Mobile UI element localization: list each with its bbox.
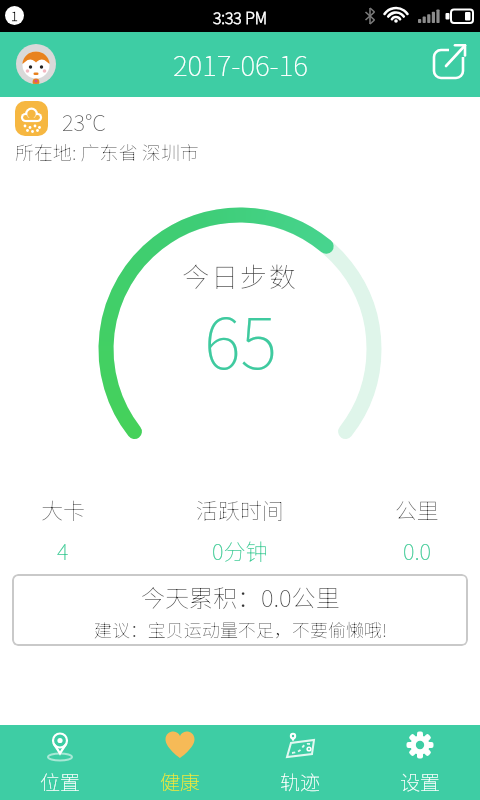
staticText: 今天累积：0.0公里 (141, 579, 340, 614)
staticText: 公里 (395, 493, 440, 525)
button[interactable] (16, 44, 56, 84)
button[interactable]: 设置 (360, 725, 480, 800)
staticText: 3:33 PM (213, 5, 268, 28)
staticText: 设置 (400, 767, 440, 796)
staticText: 1 (11, 6, 18, 25)
staticText: 2017-06-16 (173, 44, 308, 85)
staticText: 今日步数 (182, 256, 298, 295)
button[interactable]: 轨迹 (240, 725, 360, 800)
staticText: 0.0 (403, 534, 432, 566)
staticText: 位置 (40, 767, 80, 796)
staticText: 4 (57, 534, 69, 566)
button[interactable]: 今天累积：0.0公里 (12, 574, 468, 646)
staticText: 0分钟 (212, 534, 268, 566)
staticText: 65 (204, 288, 277, 384)
button[interactable]: 健康 (120, 725, 240, 800)
staticText: 23°C (62, 105, 106, 137)
staticText: 建议：宝贝运动量不足，不要偷懒哦! (94, 616, 387, 642)
staticText: 大卡 (41, 493, 86, 525)
button[interactable] (430, 40, 470, 80)
staticText: 轨迹 (280, 767, 320, 796)
staticText: 所在地: 广东省 深圳市 (15, 138, 199, 166)
staticText: 活跃时间 (196, 493, 285, 525)
button[interactable]: 位置 (0, 725, 120, 800)
staticText: 健康 (160, 767, 200, 796)
